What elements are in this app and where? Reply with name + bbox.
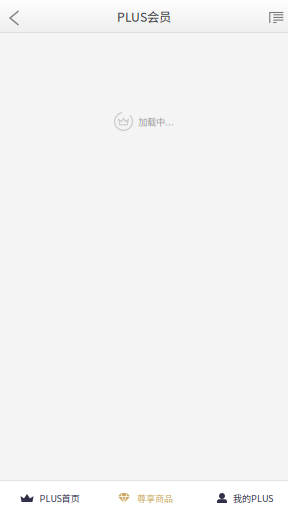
- button[interactable]: 尊享商品: [96, 480, 192, 516]
- staticText: PLUS会员: [117, 8, 171, 25]
- button[interactable]: Menu: [252, 0, 288, 33]
- button[interactable]: 我的PLUS: [192, 480, 288, 516]
- staticText: PLUS首页: [39, 491, 79, 504]
- staticText: 我的PLUS: [233, 491, 273, 504]
- staticText: 尊享商品: [137, 491, 173, 504]
- staticText: 加载中...: [138, 115, 174, 128]
- button[interactable]: Back: [0, 0, 36, 33]
- button[interactable]: PLUS首页: [0, 480, 96, 516]
